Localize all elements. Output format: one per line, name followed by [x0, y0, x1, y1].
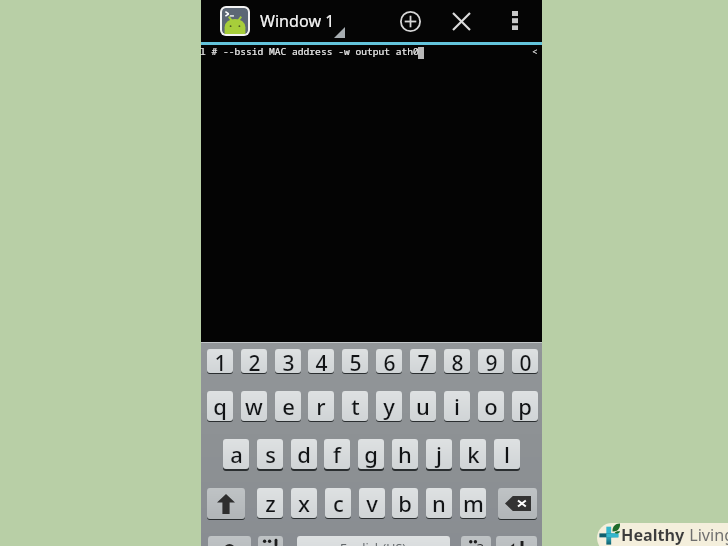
button[interactable]: ?: [461, 536, 491, 546]
button[interactable]: l: [494, 439, 520, 469]
staticText: Living: [685, 524, 728, 546]
button[interactable]: 8: [444, 349, 470, 373]
button[interactable]: [496, 536, 537, 546]
button[interactable]: 9: [478, 349, 504, 373]
button[interactable]: d: [291, 439, 317, 469]
staticText: o: [484, 391, 498, 421]
button[interactable]: s: [257, 439, 283, 469]
staticText: v: [366, 488, 378, 518]
button[interactable]: b: [392, 488, 418, 518]
button[interactable]: 2: [241, 349, 267, 373]
staticText: f: [333, 439, 341, 469]
button[interactable]: u: [410, 391, 436, 421]
button[interactable]: [207, 488, 245, 519]
button[interactable]: q: [207, 391, 233, 421]
staticText: g: [364, 439, 378, 469]
button[interactable]: r: [308, 391, 334, 421]
button[interactable]: a: [223, 439, 249, 469]
button[interactable]: f: [324, 439, 350, 469]
staticText: l # --bssid MAC address -w output ath0: [200, 45, 419, 58]
staticText: 6: [383, 349, 396, 373]
button[interactable]: New window: [390, 2, 430, 40]
button[interactable]: v: [359, 488, 385, 518]
button[interactable]: Window 1: [215, 0, 556, 42]
button[interactable]: 7: [410, 349, 436, 373]
staticText: 1: [214, 349, 227, 373]
staticText: t: [351, 391, 360, 421]
staticText: 0: [519, 349, 532, 373]
staticText: h: [398, 439, 412, 469]
button[interactable]: h: [392, 439, 418, 469]
button[interactable]: k: [460, 439, 486, 469]
staticText: 3: [282, 349, 295, 373]
staticText: a: [230, 439, 243, 469]
button[interactable]: t: [342, 391, 368, 421]
staticText: x: [298, 488, 310, 518]
staticText: w: [245, 391, 263, 421]
button[interactable]: j: [426, 439, 452, 469]
button[interactable]: c: [325, 488, 351, 518]
button[interactable]: 3: [275, 349, 301, 373]
staticText: Healthy: [621, 524, 685, 546]
button[interactable]: Close window: [441, 2, 481, 40]
staticText: j: [436, 439, 442, 469]
button[interactable]: x: [291, 488, 317, 518]
staticText: m: [463, 488, 484, 518]
staticText: n: [432, 488, 446, 518]
button[interactable]: g: [358, 439, 384, 469]
staticText: b: [398, 488, 412, 518]
staticText: d: [297, 439, 311, 469]
staticText: q: [213, 391, 227, 421]
staticText: Window 1: [260, 10, 335, 32]
button[interactable]: [208, 536, 251, 546]
button[interactable]: z: [257, 488, 283, 518]
button[interactable]: p: [512, 391, 538, 421]
staticText: ?: [477, 538, 484, 546]
button[interactable]: English(US): [297, 536, 450, 546]
button[interactable]: [258, 536, 283, 546]
button[interactable]: 5: [342, 349, 368, 373]
staticText: k: [467, 439, 480, 469]
button[interactable]: 0: [512, 349, 538, 373]
button[interactable]: 4: [308, 349, 334, 373]
staticText: 9: [485, 349, 498, 373]
staticText: e: [282, 391, 295, 421]
staticText: s: [265, 439, 276, 469]
button[interactable]: [498, 488, 537, 519]
button[interactable]: e: [275, 391, 301, 421]
staticText: y: [383, 391, 395, 421]
button[interactable]: m: [460, 488, 486, 518]
button[interactable]: More options: [497, 1, 533, 40]
button[interactable]: w: [241, 391, 267, 421]
staticText: 7: [417, 349, 430, 373]
button[interactable]: y: [376, 391, 402, 421]
button[interactable]: 6: [376, 349, 402, 373]
button[interactable]: 1: [207, 349, 233, 373]
staticText: 5: [349, 349, 362, 373]
staticText: z: [265, 488, 276, 518]
button[interactable]: o: [478, 391, 504, 421]
staticText: c: [333, 488, 344, 518]
staticText: p: [518, 391, 532, 421]
staticText: u: [416, 391, 430, 421]
staticText: 8: [451, 349, 464, 373]
staticText: 4: [315, 349, 328, 373]
button[interactable]: i: [444, 391, 470, 421]
staticText: i: [454, 391, 460, 421]
button[interactable]: n: [426, 488, 452, 518]
staticText: <: [532, 45, 538, 58]
staticText: l: [504, 439, 510, 469]
staticText: r: [316, 391, 326, 421]
staticText: 2: [248, 349, 261, 373]
staticText: English(US): [340, 540, 407, 546]
